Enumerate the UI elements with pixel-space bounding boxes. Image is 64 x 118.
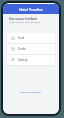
staticText: Give us your feedback	[9, 17, 37, 21]
button[interactable]: Hotel Paradise	[3, 4, 59, 14]
staticText: Parking	[18, 58, 28, 62]
staticText: Please rate our services below	[9, 21, 40, 24]
staticText: Hotel Paradise	[19, 7, 43, 12]
button[interactable]: Food	[7, 33, 55, 43]
staticText: Drinks	[18, 47, 26, 51]
staticText: Food	[18, 36, 25, 40]
button[interactable]: Terms and conditions	[18, 89, 44, 96]
button[interactable]: Drinks	[7, 44, 55, 54]
button[interactable]: Parking	[7, 55, 55, 65]
